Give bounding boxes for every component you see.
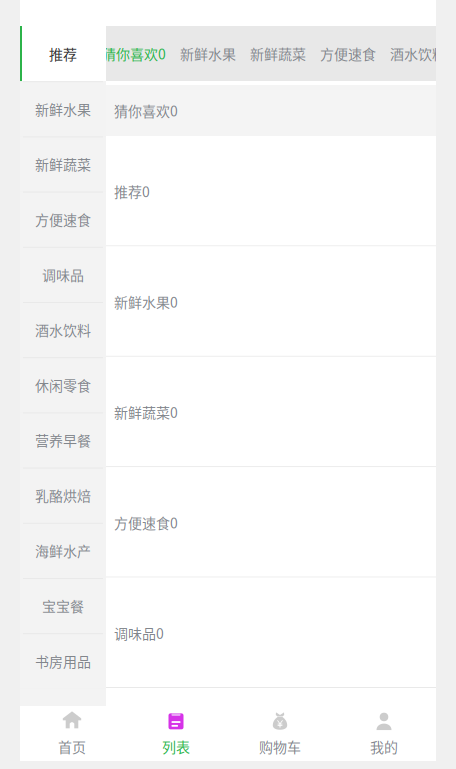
staticText: 新鲜水果 bbox=[35, 99, 91, 119]
staticText: 方便速食 bbox=[320, 43, 376, 64]
button[interactable]: 新鲜蔬菜 bbox=[243, 26, 313, 81]
staticText: 购物车 bbox=[259, 736, 301, 757]
staticText: 猜你喜欢0 bbox=[114, 100, 178, 121]
staticText: 新鲜蔬菜0 bbox=[114, 402, 178, 422]
staticText: 新鲜蔬菜 bbox=[35, 154, 91, 174]
staticText: 酒水饮料 bbox=[390, 43, 446, 64]
button[interactable]: 列表 bbox=[124, 706, 228, 761]
button[interactable]: 书房用品 bbox=[20, 633, 106, 688]
staticText: 推荐 bbox=[49, 43, 77, 64]
staticText: 乳酪烘焙 bbox=[35, 485, 91, 505]
button[interactable]: 酒水饮料 bbox=[20, 302, 106, 357]
staticText: 我的 bbox=[370, 736, 398, 757]
staticText: 营养早餐 bbox=[35, 430, 91, 450]
button[interactable]: 乳酪烘焙 bbox=[20, 468, 106, 523]
button[interactable]: 我的 bbox=[332, 706, 436, 761]
staticText: 首页 bbox=[58, 736, 86, 757]
button[interactable]: 休闲零食 bbox=[20, 357, 106, 412]
staticText: 新鲜蔬菜 bbox=[250, 43, 306, 64]
staticText: 休闲零食 bbox=[35, 375, 91, 395]
button[interactable]: 调味品 bbox=[20, 247, 106, 302]
staticText: 新鲜水果 bbox=[180, 43, 236, 64]
staticText: 推荐0 bbox=[114, 181, 150, 201]
staticText: 方便速食 bbox=[35, 209, 91, 229]
button[interactable]: 海鲜水产 bbox=[20, 523, 106, 578]
button[interactable]: 猜你喜欢0 bbox=[95, 26, 173, 81]
staticText: 猜你喜欢0 bbox=[102, 43, 166, 64]
button[interactable]: 新鲜水果 bbox=[20, 81, 106, 136]
staticText: 调味品0 bbox=[114, 623, 164, 643]
button[interactable]: 购物车 bbox=[228, 706, 332, 761]
button[interactable]: 方便速食 bbox=[20, 192, 106, 247]
button[interactable]: 新鲜水果 bbox=[173, 26, 243, 81]
button[interactable]: 首页 bbox=[20, 706, 124, 761]
staticText: 方便速食0 bbox=[114, 512, 178, 533]
button[interactable]: 酒水饮料 bbox=[383, 26, 453, 81]
button[interactable]: 新鲜蔬菜 bbox=[20, 136, 106, 192]
staticText: 海鲜水产 bbox=[35, 540, 91, 561]
staticText: 酒水饮料 bbox=[35, 319, 91, 340]
staticText: 调味品 bbox=[42, 264, 84, 285]
staticText: 书房用品 bbox=[35, 651, 91, 671]
button[interactable]: 推荐 bbox=[20, 26, 106, 81]
staticText: 列表 bbox=[162, 736, 190, 757]
button[interactable]: 宝宝餐 bbox=[20, 578, 106, 633]
staticText: 新鲜水果0 bbox=[114, 291, 178, 312]
button[interactable]: 方便速食 bbox=[313, 26, 383, 81]
staticText: 宝宝餐 bbox=[42, 595, 84, 616]
button[interactable]: 营养早餐 bbox=[20, 412, 106, 468]
